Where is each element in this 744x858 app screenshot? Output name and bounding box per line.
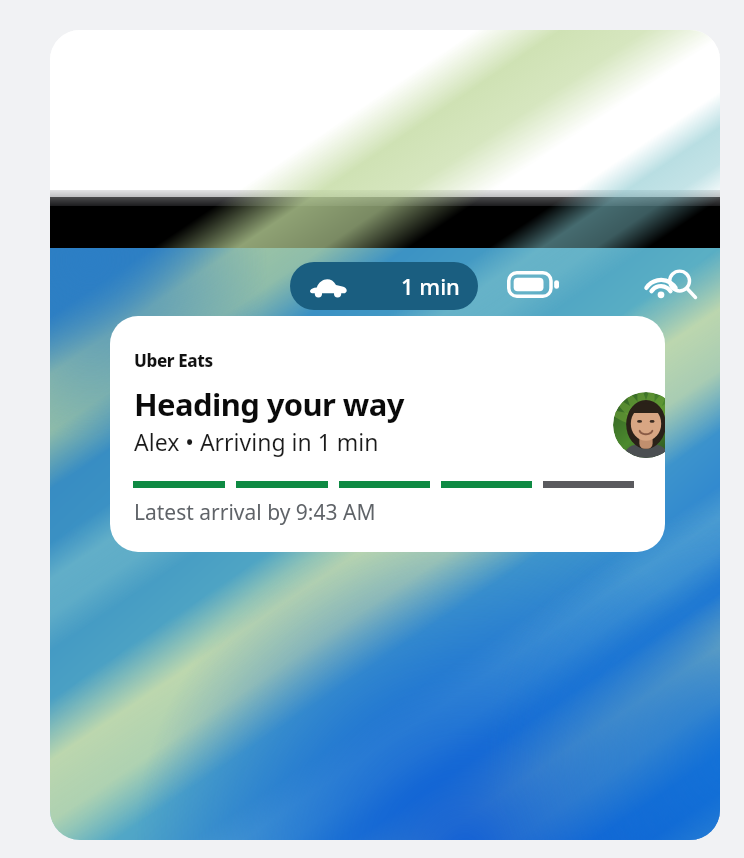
staticText: Heading your way [134, 383, 404, 425]
button[interactable]: Wi-Fi [635, 266, 687, 302]
staticText: Latest arrival by 9:43 AM [134, 498, 376, 527]
button[interactable]: Battery [505, 266, 561, 302]
button[interactable]: Search [658, 266, 706, 302]
button[interactable]: Uber Eats [110, 316, 665, 552]
button[interactable]: 1 min [290, 262, 478, 310]
staticText: Alex • Arriving in 1 min [134, 426, 379, 457]
staticText: Uber Eats [134, 349, 213, 372]
staticText: 1 min [401, 271, 460, 301]
